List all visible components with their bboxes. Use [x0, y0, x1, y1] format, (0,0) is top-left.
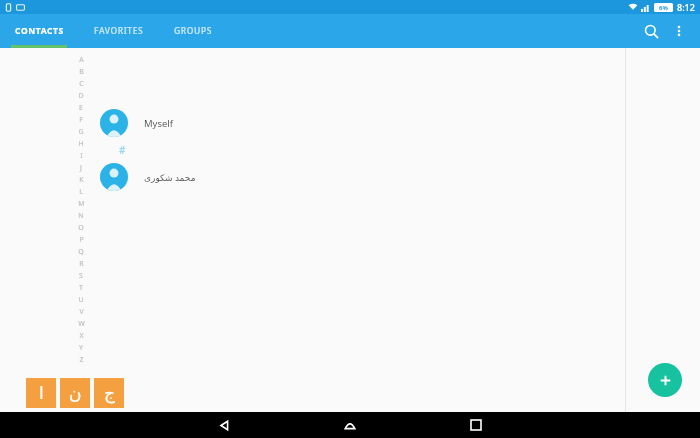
button[interactable]: Back [202, 412, 246, 438]
button[interactable]: FAVORITES [79, 14, 159, 48]
button[interactable]: Search [636, 16, 666, 46]
button[interactable]: CONTACTS [0, 14, 79, 48]
staticText: G [78, 127, 84, 137]
staticText: N [78, 211, 84, 221]
staticText: J [80, 163, 82, 173]
staticText: E [79, 103, 83, 113]
staticText: FAVORITES [94, 25, 144, 37]
staticText: 6% [659, 4, 668, 12]
button[interactable]: ن [60, 378, 90, 408]
staticText: ج [104, 383, 115, 403]
button[interactable]: Recents [454, 412, 498, 438]
staticText: # [119, 143, 126, 157]
staticText: O [78, 223, 84, 233]
staticText: C [79, 79, 84, 89]
staticText: Myself [144, 117, 174, 130]
staticText: A [79, 55, 84, 65]
staticText: M [78, 199, 85, 209]
staticText: B [79, 67, 84, 77]
button[interactable]: More options [666, 18, 692, 44]
button[interactable]: محمد شکوری [100, 160, 625, 194]
staticText: W [78, 319, 85, 329]
staticText: Y [79, 343, 83, 353]
staticText: F [79, 115, 83, 125]
button[interactable]: Myself [100, 106, 625, 140]
staticText: R [79, 259, 84, 269]
button[interactable]: ا [26, 378, 56, 408]
staticText: S [79, 271, 83, 281]
staticText: H [78, 139, 84, 149]
staticText: Q [78, 247, 84, 257]
staticText: I [80, 151, 83, 161]
button[interactable]: Home [328, 412, 372, 438]
staticText: 8:12 [677, 1, 695, 13]
staticText: U [78, 295, 84, 305]
staticText: X [79, 331, 84, 341]
button[interactable]: GROUPS [159, 14, 227, 48]
button[interactable]: ج [94, 378, 124, 408]
staticText: Z [79, 355, 84, 365]
staticText: T [79, 283, 83, 293]
staticText: L [79, 187, 83, 197]
staticText: D [78, 91, 84, 101]
staticText: CONTACTS [15, 25, 64, 37]
staticText: GROUPS [174, 25, 212, 37]
staticText: ا [39, 383, 44, 403]
button[interactable]: Add contact [648, 363, 682, 397]
staticText: P [79, 235, 84, 245]
staticText: V [79, 307, 84, 317]
staticText: محمد شکوری [144, 171, 196, 183]
staticText: K [79, 175, 84, 185]
staticText: ن [69, 383, 82, 403]
